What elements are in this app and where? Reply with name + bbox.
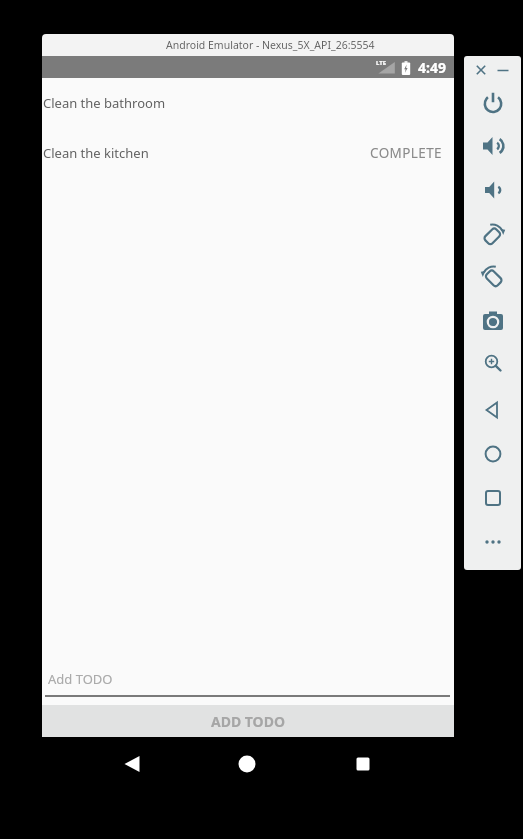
button[interactable] <box>227 744 267 784</box>
button[interactable] <box>470 59 492 81</box>
staticText: Add TODO <box>48 670 113 688</box>
staticText: LTE <box>376 59 387 67</box>
staticText: ADD TODO <box>211 712 286 731</box>
button[interactable] <box>475 85 511 121</box>
button[interactable]: Clean the bathroom <box>42 78 454 128</box>
button[interactable] <box>475 524 511 560</box>
staticText: Clean the kitchen <box>43 144 149 162</box>
button[interactable] <box>475 258 511 294</box>
button[interactable] <box>343 744 383 784</box>
button[interactable] <box>475 480 511 516</box>
button[interactable] <box>475 392 511 428</box>
staticText: COMPLETE <box>370 144 443 162</box>
button[interactable] <box>112 744 152 784</box>
button[interactable]: Add TODO <box>42 667 454 697</box>
staticText: 4:49 <box>418 58 446 77</box>
staticText: Android Emulator - Nexus_5X_API_26:5554 <box>166 38 375 52</box>
button[interactable] <box>475 128 511 164</box>
button[interactable] <box>475 172 511 208</box>
button[interactable] <box>475 345 511 381</box>
button[interactable] <box>475 302 511 338</box>
staticText: Clean the bathroom <box>43 94 166 112</box>
button[interactable]: ADD TODO <box>42 705 454 737</box>
button[interactable] <box>475 216 511 252</box>
button[interactable]: Clean the kitchen <box>42 128 454 177</box>
button[interactable] <box>492 59 514 81</box>
button[interactable] <box>475 436 511 472</box>
